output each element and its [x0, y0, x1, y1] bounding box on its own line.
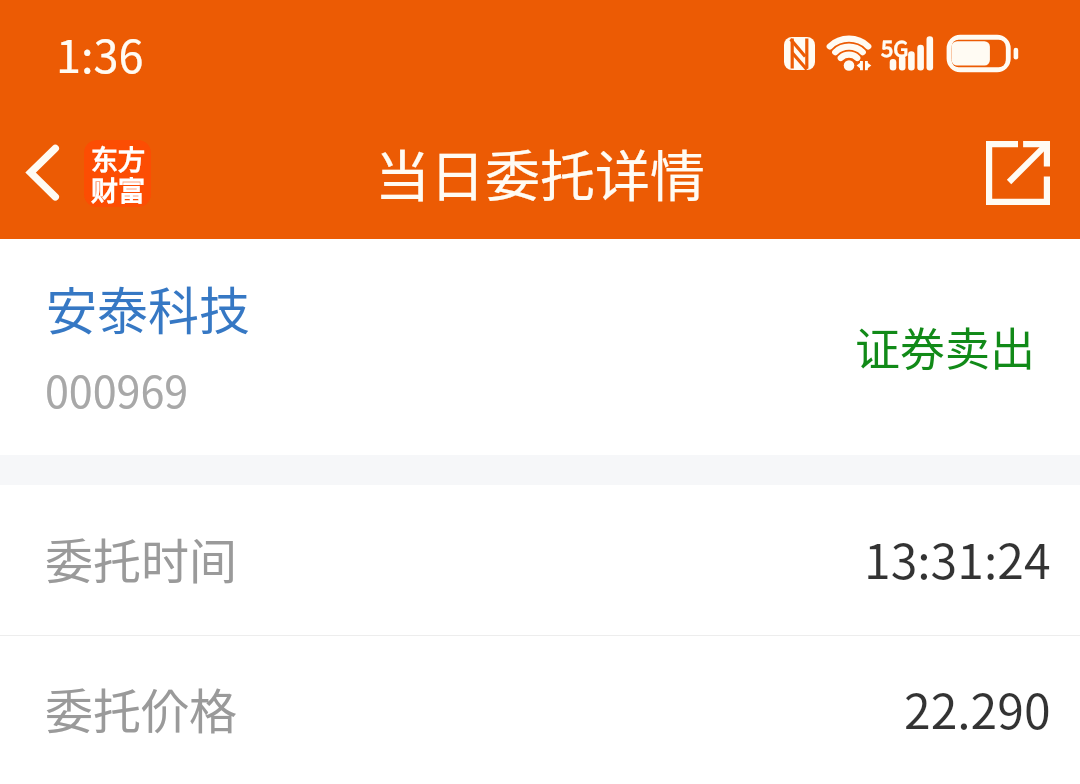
staticText: 委托时间: [45, 523, 238, 593]
button[interactable]: East Money logo: [84, 140, 151, 207]
staticText: 证券卖出: [855, 314, 1036, 379]
staticText: 000969: [45, 358, 189, 420]
button[interactable]: 安泰科技: [0, 239, 1080, 455]
staticText: 13:31:24: [864, 523, 1051, 593]
staticText: 1:36: [56, 21, 144, 86]
staticText: 22.290: [904, 673, 1051, 743]
staticText: 财富: [91, 170, 145, 207]
staticText: 当日委托详情: [375, 132, 706, 212]
staticText: 5G: [881, 31, 909, 63]
button[interactable]: 委托时间: [0, 485, 1080, 635]
button[interactable]: Share: [978, 133, 1058, 213]
staticText: 安泰科技: [46, 271, 251, 345]
staticText: 委托价格: [45, 673, 238, 743]
staticText: 东方: [91, 140, 145, 178]
button[interactable]: 委托价格: [0, 636, 1080, 784]
button[interactable]: Back: [0, 126, 88, 214]
